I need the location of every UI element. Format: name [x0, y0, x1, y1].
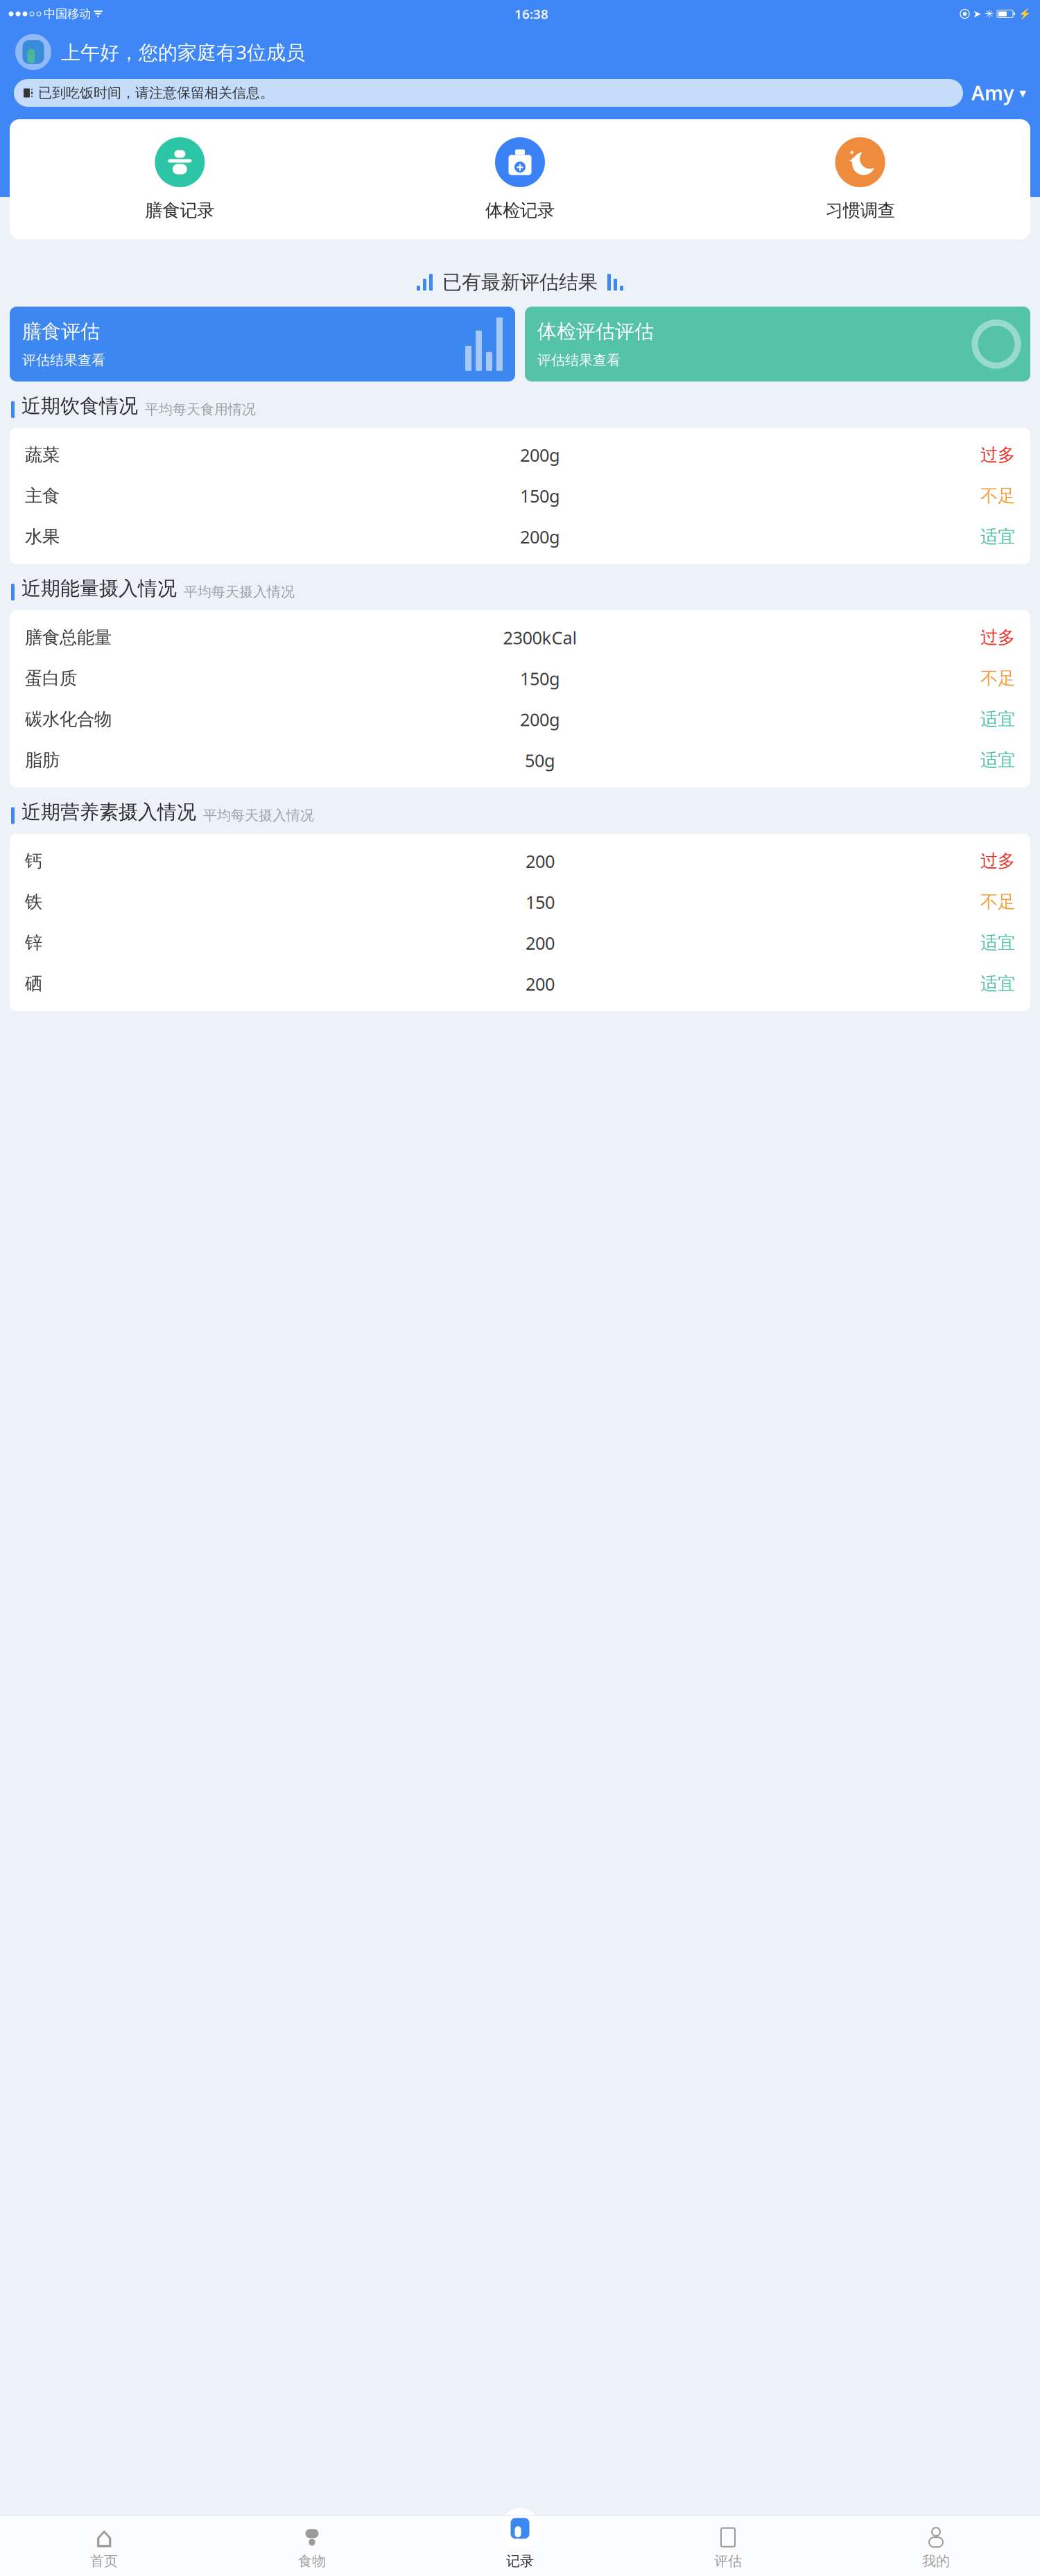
staticText: 铁	[25, 891, 42, 913]
staticText: 150g	[520, 667, 560, 690]
staticText: 上午好，您的家庭有3位成员	[61, 39, 305, 65]
staticText: ▾	[1019, 85, 1026, 101]
staticText: 硒	[25, 973, 42, 994]
staticText: 食物	[298, 2553, 326, 2570]
staticText: 200g	[520, 708, 560, 731]
staticText: 2300kCal	[503, 626, 577, 649]
staticText: Amy	[971, 80, 1014, 106]
staticText: 习惯调查	[826, 200, 895, 221]
button[interactable]: 膳食记录	[10, 137, 350, 221]
staticText: 膳食总能量	[25, 627, 112, 648]
button[interactable]: +	[350, 137, 690, 221]
staticText: 评估	[714, 2553, 742, 2570]
staticText: 适宜	[980, 526, 1015, 548]
staticText: 已有最新评估结果	[442, 270, 598, 294]
button[interactable]: Amy	[971, 80, 1026, 106]
staticText: 水果	[25, 526, 60, 548]
staticText: 近期能量摄入情况	[21, 577, 177, 600]
staticText: 200	[526, 849, 555, 873]
staticText: 平均每天摄入情况	[203, 807, 314, 824]
staticText: ✦	[849, 148, 855, 157]
staticText: 首页	[90, 2553, 118, 2570]
staticText: 过多	[980, 627, 1015, 648]
staticText: 不足	[980, 668, 1015, 689]
button[interactable]: 记录	[416, 2527, 624, 2570]
staticText: ✦	[848, 154, 858, 168]
staticText: ➤	[973, 8, 981, 20]
staticText: 不足	[980, 485, 1015, 507]
button[interactable]: ⌂	[0, 2527, 208, 2570]
staticText: 过多	[980, 444, 1015, 466]
staticText: 16:38	[514, 5, 548, 22]
button[interactable]: 体检评估评估	[525, 307, 1030, 382]
staticText: 碳水化合物	[25, 709, 112, 730]
staticText: 评估结果查看	[537, 352, 621, 369]
staticText: 适宜	[980, 973, 1015, 994]
staticText: 平均每天摄入情况	[184, 583, 295, 600]
staticText: 适宜	[980, 709, 1015, 730]
staticText: 200g	[520, 525, 560, 548]
staticText: 近期营养素摄入情况	[21, 800, 196, 824]
staticText: 中国移动	[44, 7, 91, 21]
staticText: 主食	[25, 485, 60, 507]
staticText: 钙	[25, 850, 42, 872]
staticText: ⌂	[95, 2521, 113, 2554]
staticText: 不足	[980, 891, 1015, 913]
staticText: 适宜	[980, 932, 1015, 954]
staticText: 脂肪	[25, 749, 60, 771]
staticText: 150g	[520, 484, 560, 508]
staticText: +	[516, 158, 524, 176]
staticText: 200g	[520, 443, 560, 467]
staticText: ⚡	[1019, 8, 1031, 20]
staticText: ✳	[985, 8, 994, 20]
staticText: 记录	[506, 2553, 534, 2570]
button[interactable]: 评估	[624, 2527, 832, 2570]
staticText: 已到吃饭时间，请注意保留相关信息。	[38, 84, 274, 101]
staticText: 蔬菜	[25, 444, 60, 466]
staticText: 近期饮食情况	[21, 394, 138, 418]
button[interactable]: 膳食评估	[10, 307, 515, 382]
staticText: 200	[526, 972, 555, 995]
staticText: 50g	[525, 749, 555, 772]
staticText: 膳食记录	[145, 200, 214, 221]
staticText: 体检评估评估	[537, 320, 654, 343]
staticText: 膳食评估	[22, 320, 100, 343]
staticText: 锌	[25, 932, 42, 954]
staticText: 蛋白质	[25, 668, 77, 689]
staticText: 评估结果查看	[22, 352, 105, 369]
staticText: 平均每天食用情况	[145, 401, 256, 418]
staticText: 体检记录	[485, 200, 555, 221]
button[interactable]: 我的	[832, 2527, 1040, 2570]
staticText: 150	[526, 890, 555, 914]
staticText: 200	[526, 931, 555, 954]
button[interactable]: 食物	[208, 2527, 416, 2570]
button[interactable]: ✦	[690, 137, 1030, 221]
staticText: 适宜	[980, 749, 1015, 771]
staticText: 过多	[980, 850, 1015, 872]
staticText: 我的	[922, 2553, 950, 2570]
